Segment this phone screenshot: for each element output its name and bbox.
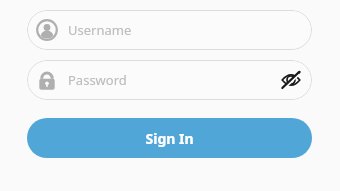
staticText: Sign In xyxy=(145,129,194,148)
button[interactable]: Sign In xyxy=(27,118,312,158)
staticText: Username xyxy=(68,21,132,39)
button[interactable]: Username xyxy=(27,10,312,50)
button[interactable]: Password xyxy=(27,60,312,100)
staticText: Password xyxy=(68,71,127,89)
button[interactable]: Show password xyxy=(278,67,304,93)
